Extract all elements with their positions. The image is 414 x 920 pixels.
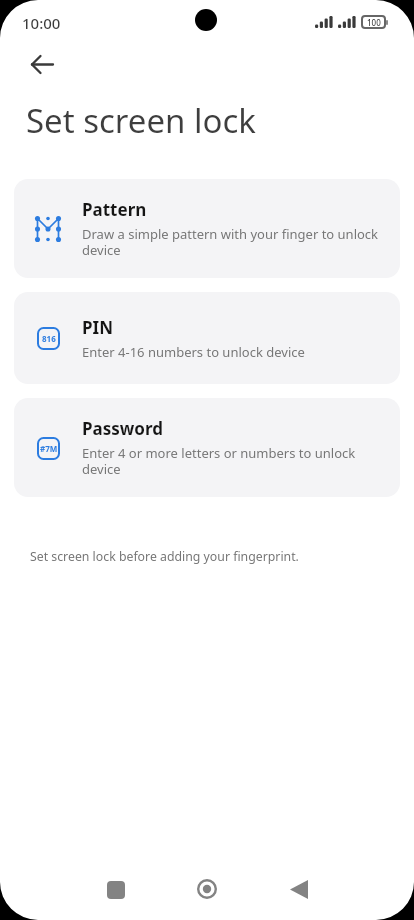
- staticText: PIN: [82, 316, 113, 339]
- button[interactable]: 816: [14, 292, 400, 384]
- staticText: 100: [367, 17, 381, 28]
- button[interactable]: #7M: [14, 398, 400, 497]
- staticText: Enter 4 or more letters or numbers to un…: [82, 444, 356, 478]
- staticText: Set screen lock: [26, 98, 256, 143]
- button[interactable]: [197, 879, 217, 899]
- staticText: 10:00: [22, 13, 61, 33]
- staticText: Set screen lock before adding your finge…: [30, 548, 299, 565]
- staticText: Draw a simple pattern with your finger t…: [82, 225, 379, 259]
- staticText: Password: [82, 417, 163, 440]
- staticText: 816: [42, 333, 56, 344]
- button[interactable]: Pattern: [14, 179, 400, 278]
- button[interactable]: [290, 880, 308, 899]
- button[interactable]: [107, 881, 125, 899]
- button[interactable]: [22, 46, 62, 82]
- staticText: #7M: [40, 443, 58, 454]
- staticText: Enter 4-16 numbers to unlock device: [82, 343, 305, 361]
- staticText: Pattern: [82, 198, 147, 221]
